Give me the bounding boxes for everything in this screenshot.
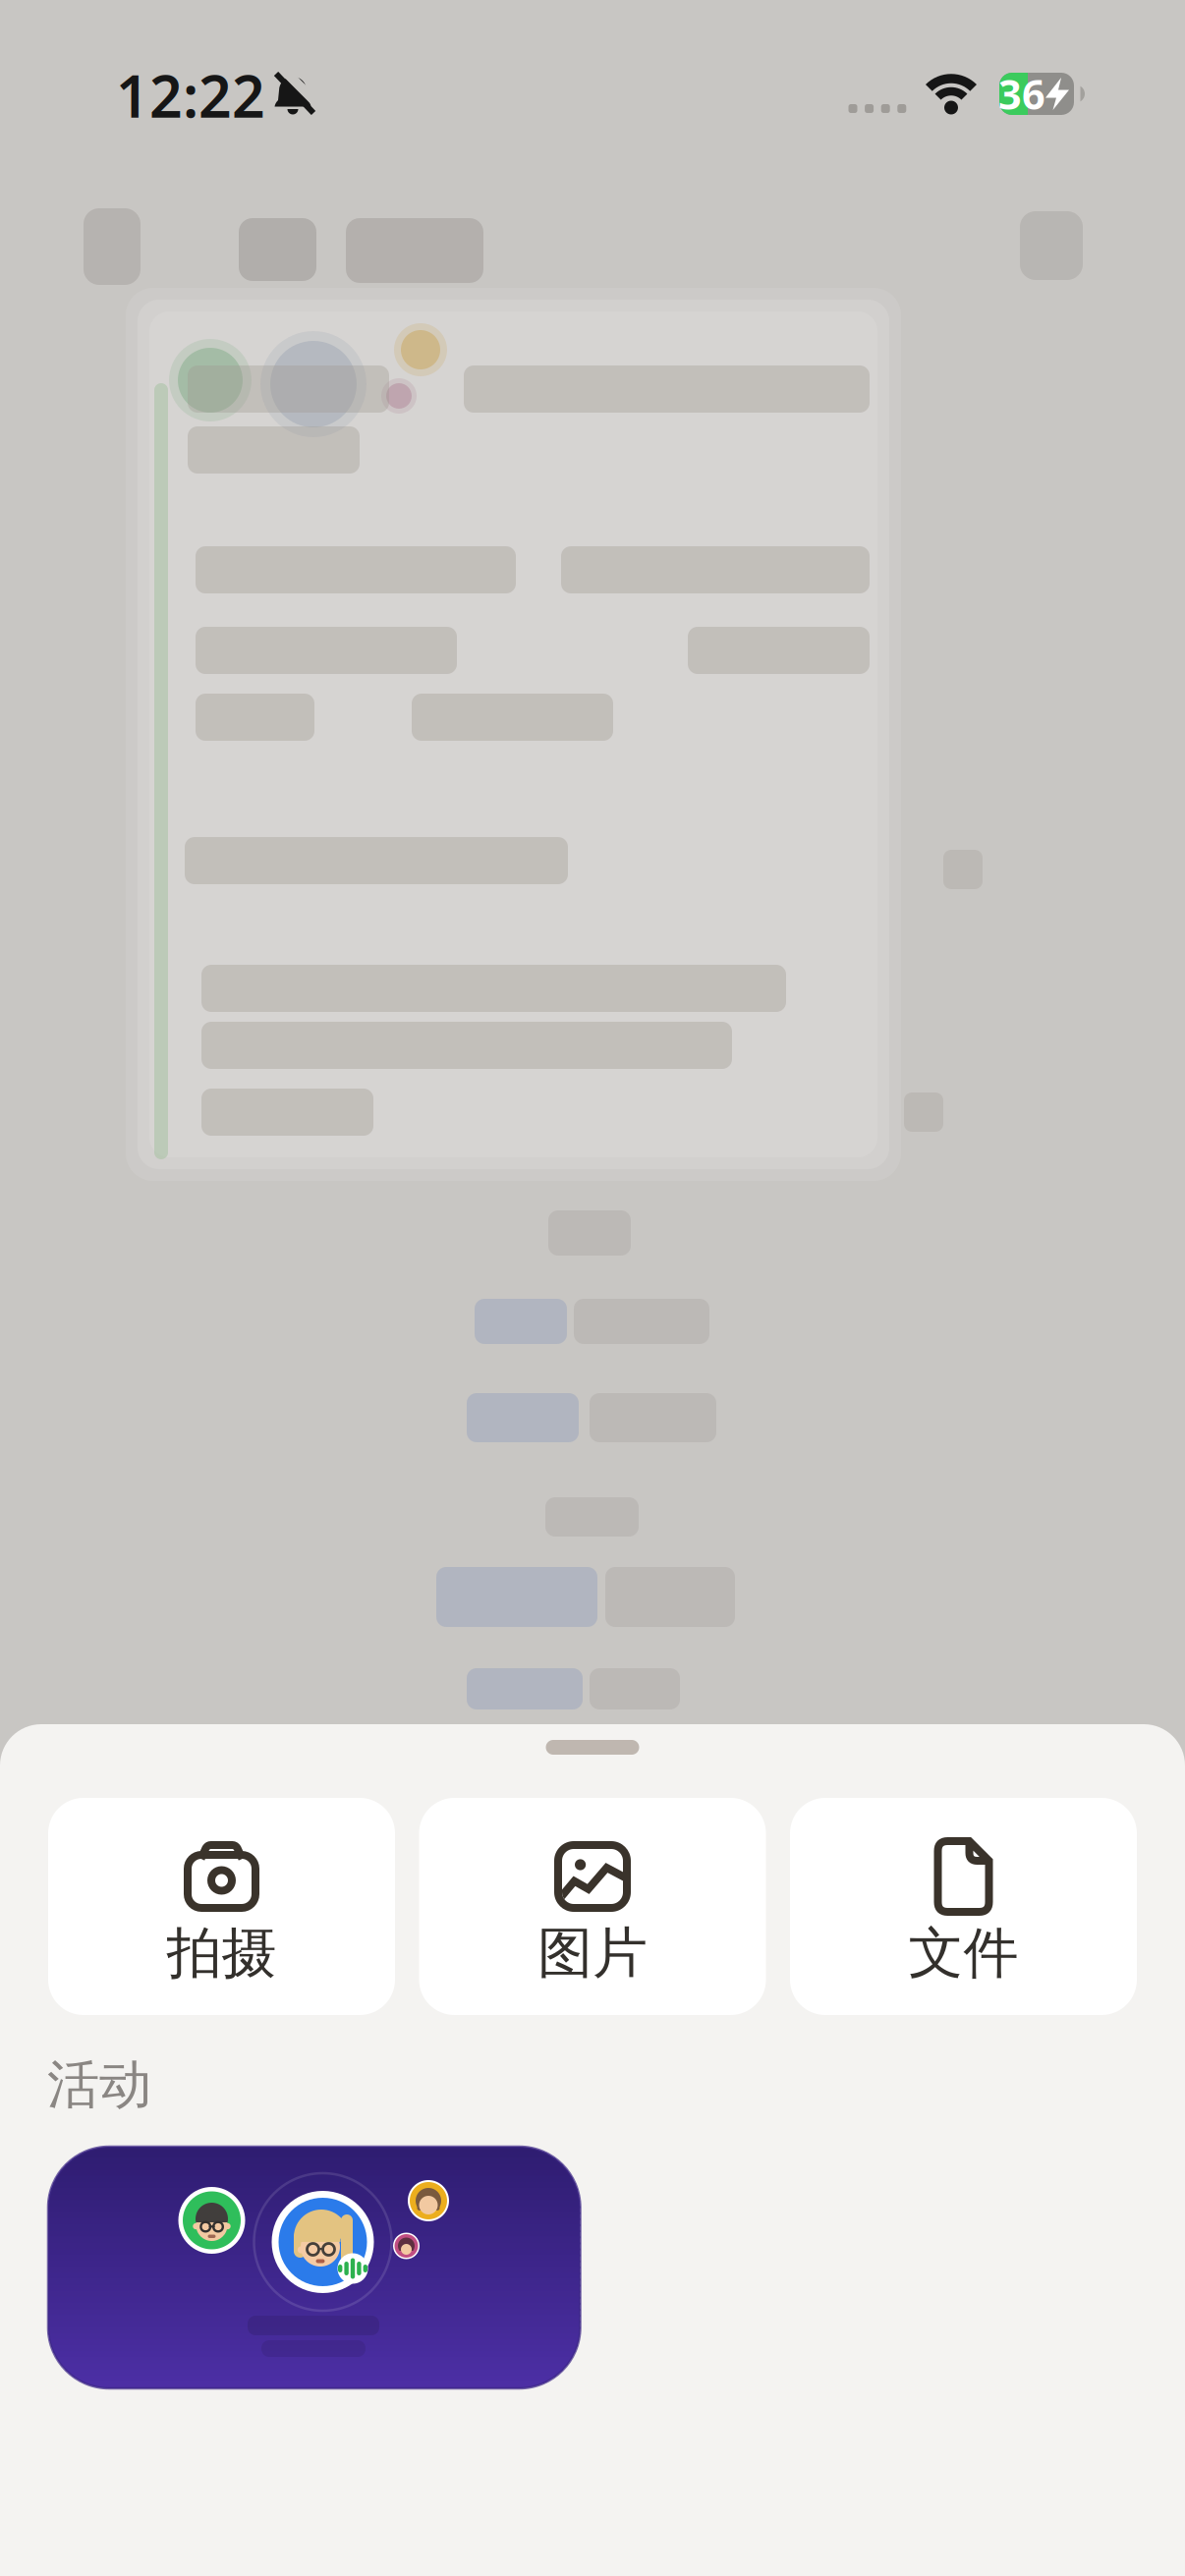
button[interactable]: 文件 — [790, 1798, 1137, 2015]
button[interactable]: 拖动指示条 — [546, 1740, 639, 1755]
staticText: 图片 — [537, 1919, 648, 1987]
staticText: 拍摄 — [167, 1919, 277, 1987]
button[interactable]: 拍摄 — [48, 1798, 395, 2015]
staticText: 12:22 — [116, 57, 265, 134]
button[interactable]: 群组通话活动 — [48, 2147, 580, 2388]
staticText: 36 — [998, 67, 1045, 121]
button[interactable]: 图片 — [419, 1798, 766, 2015]
staticText: 文件 — [908, 1919, 1018, 1987]
staticText: 活动 — [47, 2053, 151, 2117]
